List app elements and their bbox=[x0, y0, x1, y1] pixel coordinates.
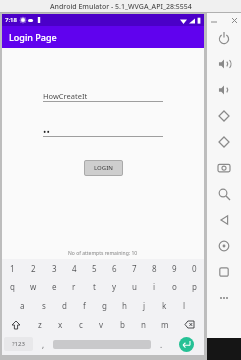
button[interactable]: 8 bbox=[144, 260, 164, 277]
other: Minimize bbox=[211, 18, 217, 23]
staticText: w bbox=[30, 281, 37, 292]
button[interactable]: •• bbox=[43, 125, 163, 137]
button[interactable]: n bbox=[133, 315, 154, 334]
staticText: 7 bbox=[132, 263, 137, 274]
staticText: , bbox=[42, 339, 45, 350]
staticText: LOGIN bbox=[94, 164, 113, 172]
button[interactable]: r bbox=[64, 277, 84, 296]
staticText: No of attempts remaining: 10 bbox=[68, 250, 138, 257]
button[interactable]: w bbox=[23, 277, 44, 296]
staticText: p bbox=[192, 281, 197, 292]
staticText: m bbox=[161, 319, 169, 330]
button[interactable]: x bbox=[50, 315, 70, 334]
staticText: u bbox=[132, 281, 137, 292]
button[interactable]: Zoom bbox=[207, 181, 241, 207]
button[interactable]: i bbox=[144, 277, 164, 296]
staticText: l bbox=[183, 300, 186, 311]
button[interactable]: 0 bbox=[184, 260, 204, 277]
staticText: k bbox=[162, 300, 167, 311]
staticText: s bbox=[42, 300, 46, 311]
button[interactable]: 3 bbox=[44, 260, 64, 277]
button[interactable]: Volume up bbox=[207, 51, 241, 77]
button[interactable]: 6 bbox=[104, 260, 124, 277]
button[interactable]: Screenshot bbox=[207, 155, 241, 181]
button[interactable]: Backspace bbox=[175, 315, 204, 334]
staticText: z bbox=[38, 319, 42, 330]
staticText: 4 bbox=[72, 263, 77, 274]
button[interactable]: g bbox=[94, 296, 114, 315]
button[interactable]: p bbox=[184, 277, 204, 296]
staticText: e bbox=[52, 281, 57, 292]
button[interactable]: . bbox=[151, 334, 171, 354]
button[interactable]: y bbox=[104, 277, 124, 296]
button[interactable]: t bbox=[84, 277, 104, 296]
button[interactable]: b bbox=[112, 315, 133, 334]
staticText: Android Emulator - 5.1_WVGA_API_28:5554 bbox=[50, 2, 192, 12]
staticText: o bbox=[172, 281, 177, 292]
staticText: h bbox=[122, 300, 127, 311]
staticText: 8 bbox=[152, 263, 157, 274]
button[interactable]: 9 bbox=[164, 260, 184, 277]
button[interactable]: q bbox=[2, 277, 23, 296]
button[interactable]: More bbox=[207, 285, 241, 311]
staticText: t bbox=[93, 281, 96, 292]
button[interactable]: Enter bbox=[179, 337, 194, 352]
button[interactable]: v bbox=[91, 315, 112, 334]
button[interactable]: Overview bbox=[207, 259, 241, 285]
button[interactable]: l bbox=[174, 296, 194, 315]
button[interactable]: Login Page bbox=[2, 26, 204, 48]
staticText: y bbox=[112, 281, 117, 292]
button[interactable]: Volume down bbox=[207, 77, 241, 103]
button[interactable]: Rotate left bbox=[207, 103, 241, 129]
staticText: Login Page bbox=[9, 31, 57, 43]
button[interactable]: LOGIN bbox=[84, 160, 123, 176]
button[interactable]: ?123 bbox=[4, 337, 33, 351]
staticText: f bbox=[83, 300, 86, 311]
staticText: . bbox=[160, 339, 163, 350]
button[interactable]: e bbox=[44, 277, 64, 296]
button[interactable]: 5 bbox=[84, 260, 104, 277]
staticText: 2 bbox=[31, 263, 36, 274]
button[interactable]: z bbox=[30, 315, 50, 334]
staticText: g bbox=[102, 300, 107, 311]
button[interactable]: 1 bbox=[2, 260, 23, 277]
staticText: 0 bbox=[192, 263, 197, 274]
staticText: n bbox=[141, 319, 146, 330]
button[interactable]: Home bbox=[207, 233, 241, 259]
button[interactable]: k bbox=[154, 296, 174, 315]
button[interactable]: o bbox=[164, 277, 184, 296]
staticText: q bbox=[10, 281, 15, 292]
staticText: a bbox=[20, 300, 25, 311]
other: Close bbox=[232, 18, 237, 23]
staticText: c bbox=[79, 319, 83, 330]
button[interactable]: 2 bbox=[23, 260, 44, 277]
staticText: d bbox=[62, 300, 67, 311]
button[interactable]: u bbox=[124, 277, 144, 296]
button[interactable]: , bbox=[33, 334, 53, 354]
button[interactable]: h bbox=[114, 296, 134, 315]
button[interactable]: m bbox=[154, 315, 175, 334]
button[interactable]: d bbox=[54, 296, 74, 315]
button[interactable]: 4 bbox=[64, 260, 84, 277]
button[interactable]: s bbox=[33, 296, 54, 315]
button[interactable]: Shift bbox=[2, 315, 30, 334]
staticText: j bbox=[143, 300, 146, 311]
staticText: ?123 bbox=[12, 340, 25, 348]
button[interactable]: Power bbox=[207, 25, 241, 51]
staticText: i bbox=[153, 281, 156, 292]
staticText: r bbox=[72, 281, 76, 292]
button[interactable]: Back bbox=[207, 207, 241, 233]
staticText: HowCreateIt bbox=[43, 91, 88, 101]
button[interactable]: j bbox=[134, 296, 154, 315]
button[interactable]: a bbox=[12, 296, 33, 315]
button[interactable]: HowCreateIt bbox=[43, 89, 163, 102]
staticText: 9 bbox=[172, 263, 177, 274]
staticText: x bbox=[58, 319, 63, 330]
button[interactable]: f bbox=[74, 296, 94, 315]
staticText: v bbox=[99, 319, 104, 330]
staticText: 3 bbox=[52, 263, 57, 274]
button[interactable]: Rotate right bbox=[207, 129, 241, 155]
button[interactable]: 7 bbox=[124, 260, 144, 277]
button[interactable]: c bbox=[70, 315, 91, 334]
